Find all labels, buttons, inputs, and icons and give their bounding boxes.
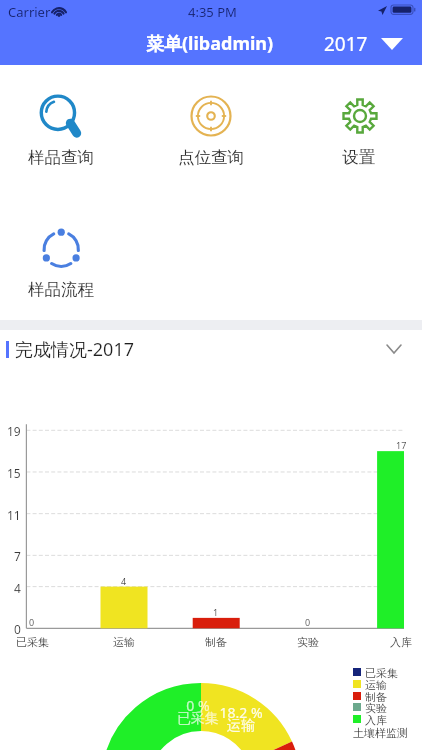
staticText: 实验	[297, 635, 319, 649]
staticText: 样品流程	[28, 279, 94, 300]
other: Collapse	[387, 345, 401, 353]
staticText: 完成情况-2017	[15, 337, 134, 362]
staticText: 4	[14, 580, 21, 596]
staticText: 运输	[365, 678, 387, 692]
staticText: 4	[121, 575, 127, 587]
button[interactable]: 点位查询	[165, 94, 257, 168]
button[interactable]: 完成情况-2017	[0, 330, 422, 368]
button[interactable]: 设置	[312, 94, 404, 168]
staticText: 入库	[390, 635, 412, 649]
staticText: 运输	[113, 635, 135, 649]
staticText: 样品查询	[28, 147, 94, 168]
staticText: 制备	[205, 635, 227, 649]
other: Select year	[381, 38, 403, 50]
staticText: 19	[7, 423, 21, 439]
staticText: 土壤样监测	[353, 726, 408, 740]
button[interactable]: 样品流程	[15, 226, 107, 300]
button[interactable]: 样品查询	[15, 94, 107, 168]
staticText: 0 % 已采集	[158, 696, 238, 727]
staticText: 已采集	[365, 666, 398, 680]
staticText: 设置	[342, 147, 375, 168]
staticText: 0	[29, 616, 35, 628]
staticText: 已采集	[16, 635, 49, 649]
staticText: 4:35 PM	[188, 3, 237, 21]
staticText: 17	[396, 439, 407, 451]
button[interactable]: 2017	[310, 27, 422, 61]
staticText: 菜单(libadmin)	[146, 31, 274, 56]
staticText: 1	[213, 606, 219, 618]
staticText: 实验	[365, 701, 387, 715]
staticText: Carrier	[8, 3, 51, 21]
staticText: 11	[7, 507, 21, 523]
staticText: 15	[7, 465, 21, 481]
staticText: 7	[14, 548, 21, 564]
staticText: 18.2 % 运输	[201, 703, 281, 734]
staticText: 点位查询	[178, 147, 244, 168]
staticText: 制备	[365, 690, 387, 704]
staticText: 2017	[324, 31, 368, 57]
staticText: 入库	[365, 713, 387, 727]
staticText: 0	[14, 621, 21, 637]
staticText: 0	[305, 616, 311, 628]
